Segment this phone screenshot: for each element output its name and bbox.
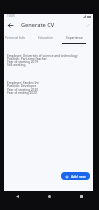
staticText: Position: Developer xyxy=(7,84,37,88)
other: Back xyxy=(16,195,19,198)
staticText: Still working xyxy=(7,63,26,67)
button[interactable]: Add new xyxy=(61,172,90,180)
staticText: Education xyxy=(38,36,53,40)
staticText: Employer: University of science and tech… xyxy=(7,54,78,58)
staticText: Position: Part-time teacher xyxy=(7,57,47,61)
button[interactable]: Back xyxy=(4,19,16,31)
staticText: Experience xyxy=(66,36,83,40)
button[interactable]: Education xyxy=(30,33,60,42)
staticText: Personal Info xyxy=(5,36,25,40)
staticText: 10:05 xyxy=(7,14,15,18)
staticText: Year of starting 2019 xyxy=(7,60,39,64)
staticText: Year of starting 2020 xyxy=(7,88,39,92)
button[interactable]: Personal Info xyxy=(0,33,30,42)
button[interactable]: Done xyxy=(83,20,93,30)
staticText: Add new xyxy=(71,174,86,179)
staticText: Generate CV xyxy=(21,21,55,29)
staticText: Year of ending 2020 xyxy=(7,91,37,95)
button[interactable]: Experience xyxy=(60,33,89,42)
staticText: Employer: Yandex Inc xyxy=(7,81,40,85)
other: Home xyxy=(48,195,51,198)
